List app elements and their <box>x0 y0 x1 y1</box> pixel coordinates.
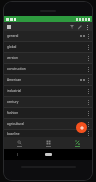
button[interactable]: More options <box>86 54 90 62</box>
button[interactable]: industrial <box>4 86 92 96</box>
button[interactable]: More options <box>86 65 90 73</box>
staticText: century <box>7 100 86 104</box>
button[interactable]: century <box>4 97 92 107</box>
button[interactable]: baseline <box>4 130 92 137</box>
staticText: version <box>7 56 86 60</box>
button[interactable]: Select all <box>6 24 12 30</box>
staticText: general <box>7 34 80 38</box>
button[interactable]: Add <box>76 122 87 133</box>
button[interactable]: Tools <box>63 137 92 149</box>
staticText: global <box>7 45 86 49</box>
staticText: construction <box>7 67 86 71</box>
staticText: baseline <box>7 132 86 136</box>
button[interactable]: More options <box>86 120 90 128</box>
button[interactable]: More options <box>86 109 90 117</box>
button[interactable]: More options <box>86 87 90 95</box>
button[interactable]: agricultural <box>4 119 92 129</box>
button[interactable]: Edit <box>76 23 83 30</box>
button[interactable]: construction <box>4 64 92 74</box>
staticText: industrial <box>7 89 86 93</box>
button[interactable]: More options <box>86 98 90 106</box>
staticText: American <box>7 78 80 82</box>
button[interactable]: More options <box>86 130 90 137</box>
staticText: fashion <box>7 111 86 115</box>
button[interactable]: Search <box>4 137 34 149</box>
button[interactable]: version <box>4 53 92 63</box>
button[interactable]: More options <box>86 43 90 51</box>
button[interactable]: global <box>4 42 92 52</box>
button[interactable]: More options <box>86 76 90 84</box>
button[interactable]: fashion <box>4 108 92 118</box>
button[interactable]: Filter <box>68 23 75 30</box>
staticText: agricultural <box>7 122 86 126</box>
button[interactable]: More options <box>86 32 90 40</box>
button[interactable]: Grid <box>34 137 63 149</box>
button[interactable]: American <box>4 75 92 85</box>
button[interactable]: general <box>4 31 92 41</box>
button[interactable]: More options <box>84 24 90 30</box>
